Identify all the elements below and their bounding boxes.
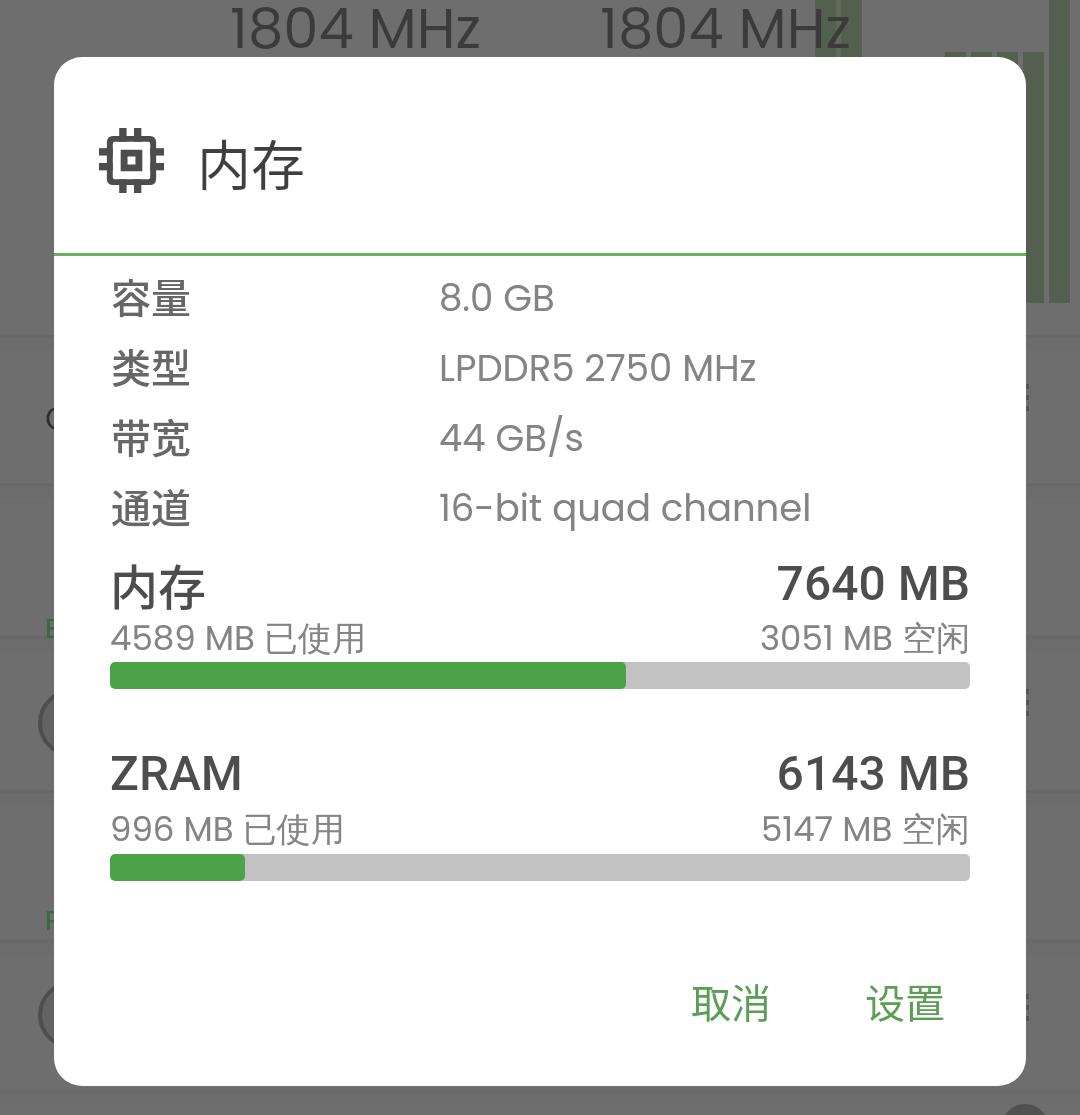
staticText: 通道 bbox=[111, 477, 191, 535]
staticText: 16-bit quad channel bbox=[439, 482, 812, 534]
other: Memory bbox=[99, 128, 164, 193]
staticText: ZRAM bbox=[110, 745, 243, 801]
staticText: 5147 MB 空闲 bbox=[761, 805, 970, 853]
staticText: 1804 MHz bbox=[230, 0, 482, 67]
staticText: 1804 MHz bbox=[600, 0, 852, 67]
staticText: CPU bbox=[45, 396, 110, 441]
staticText: 内存 bbox=[197, 123, 305, 201]
staticText: 7640 MB bbox=[776, 555, 970, 611]
staticText: 带宽 bbox=[111, 407, 191, 465]
staticText: LPDDR5 2750 MHz bbox=[439, 342, 757, 394]
staticText: 内存 bbox=[110, 549, 207, 619]
staticText: 设置 bbox=[865, 972, 945, 1030]
button[interactable]: 取消 bbox=[680, 959, 782, 1043]
staticText: Prime bbox=[45, 903, 121, 939]
staticText: Big bbox=[45, 611, 86, 647]
staticText: 容量 bbox=[111, 267, 191, 325]
staticText: 类型 bbox=[111, 337, 191, 395]
staticText: 6143 MB bbox=[776, 745, 970, 801]
staticText: 996 MB 已使用 bbox=[110, 805, 345, 853]
staticText: 取消 bbox=[691, 972, 771, 1030]
staticText: 4589 MB 已使用 bbox=[110, 614, 366, 662]
button[interactable]: 设置 bbox=[854, 959, 956, 1043]
staticText: 8.0 GB bbox=[439, 272, 555, 324]
staticText: 44 GB/s bbox=[439, 412, 584, 464]
staticText: 3051 MB 空闲 bbox=[760, 614, 970, 662]
